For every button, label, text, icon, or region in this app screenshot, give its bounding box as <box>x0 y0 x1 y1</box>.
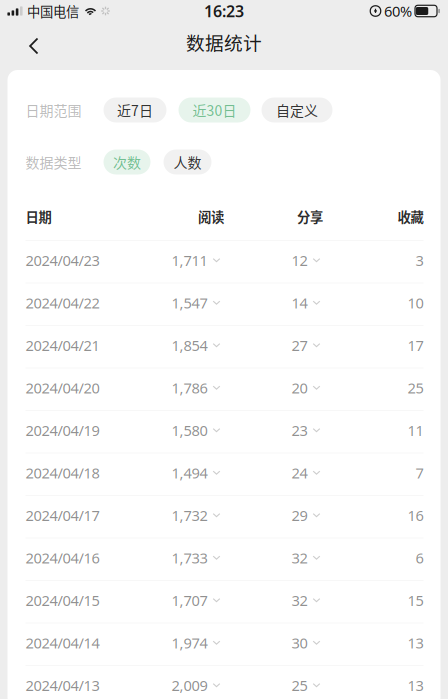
staticText: 自定义 <box>276 100 318 120</box>
staticText: 1,733 <box>171 548 207 567</box>
staticText: 11 <box>407 420 423 440</box>
staticText: 1,854 <box>171 335 207 355</box>
button[interactable]: Back <box>12 24 56 68</box>
staticText: 数据类型 <box>25 152 81 172</box>
staticText: 2024/04/13 <box>25 675 99 695</box>
staticText: 23 <box>291 420 307 440</box>
staticText: 近30日 <box>192 100 236 120</box>
staticText: 13 <box>407 633 423 652</box>
staticText: 1,786 <box>171 378 207 397</box>
staticText: 13 <box>407 675 423 695</box>
staticText: 2024/04/20 <box>25 378 99 397</box>
staticText: 近7日 <box>117 100 153 120</box>
button[interactable]: 近30日 <box>178 97 250 122</box>
staticText: 2024/04/19 <box>25 420 99 440</box>
staticText: 15 <box>407 590 423 610</box>
staticText: 2024/04/15 <box>25 590 99 610</box>
staticText: 收藏 <box>397 207 423 226</box>
staticText: 分享 <box>297 207 323 226</box>
staticText: 17 <box>407 335 423 355</box>
staticText: 1,711 <box>171 250 207 270</box>
staticText: 10 <box>407 293 423 312</box>
staticText: 阅读 <box>198 207 224 226</box>
staticText: 20 <box>291 378 307 397</box>
staticText: 25 <box>291 675 307 695</box>
staticText: 1,732 <box>171 505 207 525</box>
staticText: 日期范围 <box>25 100 81 120</box>
staticText: 2024/04/18 <box>25 463 99 482</box>
button[interactable]: 近7日 <box>103 97 166 122</box>
staticText: 2024/04/23 <box>25 250 99 270</box>
staticText: 2024/04/14 <box>25 633 99 652</box>
staticText: 32 <box>291 548 307 567</box>
staticText: 2024/04/22 <box>25 293 99 312</box>
staticText: 1,580 <box>171 420 207 440</box>
button[interactable]: 次数 <box>103 149 150 174</box>
staticText: 1,494 <box>171 463 207 482</box>
staticText: 数据统计 <box>186 28 262 55</box>
staticText: 60% <box>384 1 412 21</box>
staticText: 人数 <box>173 152 201 172</box>
staticText: 中国电信 <box>27 1 79 21</box>
staticText: 1,974 <box>171 633 207 652</box>
staticText: 2024/04/21 <box>25 335 99 355</box>
staticText: 次数 <box>113 152 141 172</box>
button[interactable]: 自定义 <box>261 97 332 122</box>
button[interactable]: 人数 <box>163 149 211 174</box>
staticText: 27 <box>291 335 307 355</box>
staticText: 7 <box>415 463 423 482</box>
staticText: 16:23 <box>204 0 244 22</box>
staticText: 2024/04/17 <box>25 505 99 525</box>
staticText: 25 <box>407 378 423 397</box>
staticText: 12 <box>291 250 307 270</box>
staticText: 1,707 <box>171 590 207 610</box>
staticText: 29 <box>291 505 307 525</box>
staticText: 1,547 <box>171 293 207 312</box>
staticText: 32 <box>291 590 307 610</box>
staticText: 2,009 <box>171 675 207 695</box>
staticText: 3 <box>415 250 423 270</box>
staticText: 6 <box>415 548 423 567</box>
staticText: 30 <box>291 633 307 652</box>
staticText: 日期 <box>25 207 51 226</box>
staticText: 24 <box>291 463 307 482</box>
staticText: 14 <box>291 293 307 312</box>
staticText: 2024/04/16 <box>25 548 99 567</box>
staticText: 16 <box>407 505 423 525</box>
